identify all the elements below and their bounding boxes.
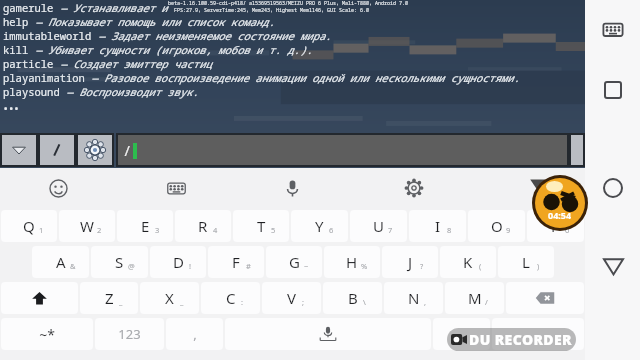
staticText: @ [128,261,135,271]
staticText: 9 [506,225,511,235]
staticText: help [3,15,29,29]
staticText: 2 [97,225,102,235]
staticText: Y [315,216,324,236]
button[interactable]: K [440,246,496,278]
staticText: — Задает неизменяемое состояние мира. [92,29,332,43]
staticText: 8 [447,225,452,235]
button[interactable]: A [32,246,89,278]
staticText: ~ [304,261,309,271]
staticText: 4 [213,225,218,235]
button[interactable]: Space [225,318,431,350]
staticText: ? [420,261,424,271]
button[interactable]: O [468,210,525,242]
button[interactable]: Home [591,166,635,210]
staticText: ; [302,297,305,307]
staticText: 6 [329,225,334,235]
button[interactable]: Enter [492,318,584,350]
button[interactable]: Slash [40,135,74,165]
staticText: , [424,297,427,307]
staticText: P [551,216,561,236]
staticText: G [289,252,300,272]
staticText: ~* [39,325,55,344]
staticText: D [173,252,184,272]
staticText: , [193,325,197,343]
staticText: beta-1.16.100.59-cdi-p418/ a15369519563/… [168,0,409,7]
button[interactable]: T [233,210,289,242]
staticText: . [460,325,464,343]
button[interactable]: Backspace [506,282,584,314]
staticText: / [123,141,132,160]
button[interactable]: R [175,210,231,242]
staticText: immutableworld [3,29,92,43]
staticText: E [141,216,150,236]
button[interactable]: J [382,246,438,278]
staticText: C [226,288,236,308]
staticText: FPS:27.9, ServerTime:245, Mem243, Highes… [174,7,370,14]
button[interactable]: D [150,246,206,278]
button[interactable]: E [117,210,173,242]
staticText: DU RECORDER [469,330,572,349]
button[interactable]: Symbols [1,318,93,350]
staticText: O [491,216,503,236]
staticText: playsound [3,85,60,99]
button[interactable]: Shift [1,282,78,314]
staticText: J [408,252,413,272]
staticText: — Убивает сущности (игроков, мобов и т. … [29,43,313,57]
button[interactable]: Emotes [78,135,112,165]
staticText: ( [479,261,482,271]
staticText: — Создает эмиттер частиц [54,57,212,71]
button[interactable]: M [445,282,504,314]
button[interactable]: L [498,246,554,278]
staticText: Q [23,216,35,236]
staticText: A [56,252,66,272]
staticText: 04:54 [548,209,572,221]
button[interactable]: C [201,282,260,314]
staticText: — Показывает помощь или список команд. [29,15,275,29]
button[interactable]: Hide keyboard [591,8,635,52]
staticText: playanimation [3,71,85,85]
button[interactable]: I [409,210,466,242]
button[interactable]: N [384,282,443,314]
staticText: Z [105,288,114,308]
staticText: / [485,297,488,307]
button[interactable]: Q [1,210,57,242]
staticText: M [468,288,482,308]
staticText: 7 [388,225,393,235]
button[interactable]: G [266,246,322,278]
button[interactable]: Voice input [274,170,310,206]
staticText: 123 [118,325,141,343]
button[interactable]: Z [80,282,138,314]
staticText: ! [189,261,192,271]
button[interactable]: Y [291,210,348,242]
button[interactable]: F [208,246,264,278]
button[interactable]: Keyboard layout [158,170,194,206]
button[interactable]: Period [433,318,490,350]
button[interactable]: Recents [591,68,635,112]
button[interactable]: / [118,135,567,165]
button[interactable]: Emoji [40,170,76,206]
button[interactable]: Recording overlay 04:54 [535,178,585,228]
staticText: % [361,261,368,271]
button[interactable]: W [59,210,115,242]
button[interactable]: Comma [166,318,223,350]
staticText: 3 [155,225,160,235]
staticText: T [257,216,266,236]
staticText: ) [537,261,540,271]
button[interactable]: Numbers [95,318,164,350]
staticText: — Воспроизводит звук. [60,85,199,99]
staticText: & [70,261,76,271]
button[interactable]: H [324,246,380,278]
button[interactable]: Collapse [2,135,36,165]
button[interactable]: S [91,246,148,278]
staticText: B [348,288,358,308]
staticText: X [165,288,174,308]
button[interactable]: P [527,210,584,242]
staticText: — Устанавливает и [54,1,168,15]
button[interactable]: X [140,282,199,314]
button[interactable]: B [323,282,382,314]
button[interactable]: Back [591,244,635,288]
button[interactable]: U [350,210,407,242]
button[interactable]: V [262,282,321,314]
button[interactable]: Settings [396,170,432,206]
